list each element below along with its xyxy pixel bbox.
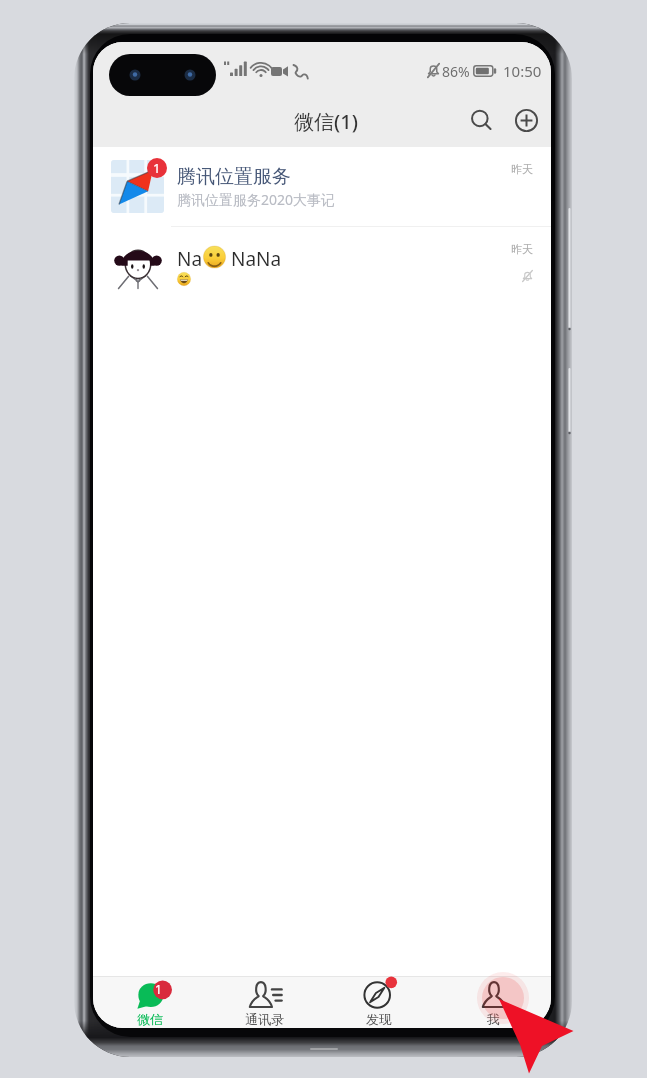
- button[interactable]: 1: [93, 147, 551, 226]
- staticText: 微信(1): [294, 108, 358, 135]
- staticText: 微信: [137, 1011, 163, 1027]
- staticText: 发现: [366, 1011, 392, 1027]
- button[interactable]: 我: [436, 977, 551, 1028]
- button[interactable]: 发现: [321, 977, 436, 1028]
- staticText: 1: [153, 159, 161, 177]
- staticText: 腾讯位置服务2020大事记: [177, 190, 336, 209]
- button[interactable]: 1: [93, 977, 207, 1028]
- staticText: 我: [487, 1011, 500, 1027]
- button[interactable]: Search: [463, 102, 499, 138]
- staticText: Na: [177, 246, 203, 268]
- staticText: 1: [155, 981, 162, 997]
- staticText: 昨天: [511, 162, 533, 176]
- staticText: 昨天: [511, 242, 533, 256]
- button[interactable]: Add: [508, 102, 544, 138]
- staticText: 86%: [442, 62, 470, 81]
- button[interactable]: Na: [93, 227, 551, 306]
- staticText: NaNa: [226, 246, 282, 268]
- button[interactable]: 通讯录: [207, 977, 321, 1028]
- staticText: 腾讯位置服务: [177, 165, 291, 189]
- staticText: 10:50: [503, 61, 542, 81]
- staticText: 通讯录: [245, 1011, 284, 1027]
